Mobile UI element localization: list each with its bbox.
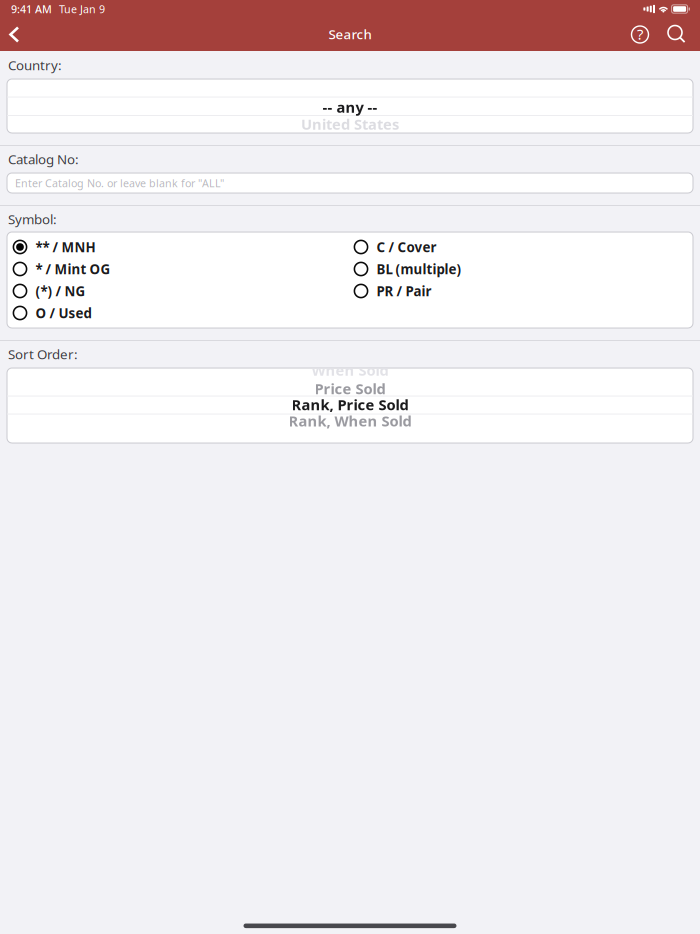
staticText: When Sold [311,360,388,380]
staticText: -- any -- [322,97,377,117]
staticText: Catalog No: [8,150,79,168]
staticText: C / Cover [376,238,436,256]
button[interactable]: ** / MNH [13,236,343,258]
staticText: Rank, Price Sold [291,395,408,414]
staticText: BL (multiple) [376,260,461,278]
button[interactable]: Sort order picker [7,368,693,443]
button[interactable]: * / Mint OG [13,258,343,280]
button[interactable]: Back [0,18,33,51]
staticText: Search [328,25,371,43]
button[interactable]: Catalog number field [7,173,693,193]
staticText: Enter Catalog No. or leave blank for "AL… [15,176,224,190]
staticText: ** / MNH [35,238,95,256]
button[interactable]: Search [657,18,697,51]
staticText: * / Mint OG [35,260,110,278]
staticText: 9:41 AM [11,2,52,16]
staticText: Sort Order: [8,345,78,363]
button[interactable]: BL (multiple) [354,258,674,280]
button[interactable]: PR / Pair [354,280,674,302]
staticText: Symbol: [8,210,57,228]
staticText: O / Used [35,304,91,322]
staticText: United States [301,114,399,134]
button[interactable]: (*) / NG [13,280,343,302]
button[interactable]: Country picker [7,79,693,133]
staticText: (*) / NG [35,282,85,300]
button[interactable]: Help [620,18,660,51]
staticText: Price Sold [314,379,385,398]
staticText: PR / Pair [376,282,431,300]
button[interactable]: C / Cover [354,236,674,258]
staticText: Rank, When Sold [288,411,411,431]
staticText: Country: [8,56,62,74]
staticText: Tue Jan 9 [59,2,105,16]
button[interactable]: O / Used [13,302,343,324]
